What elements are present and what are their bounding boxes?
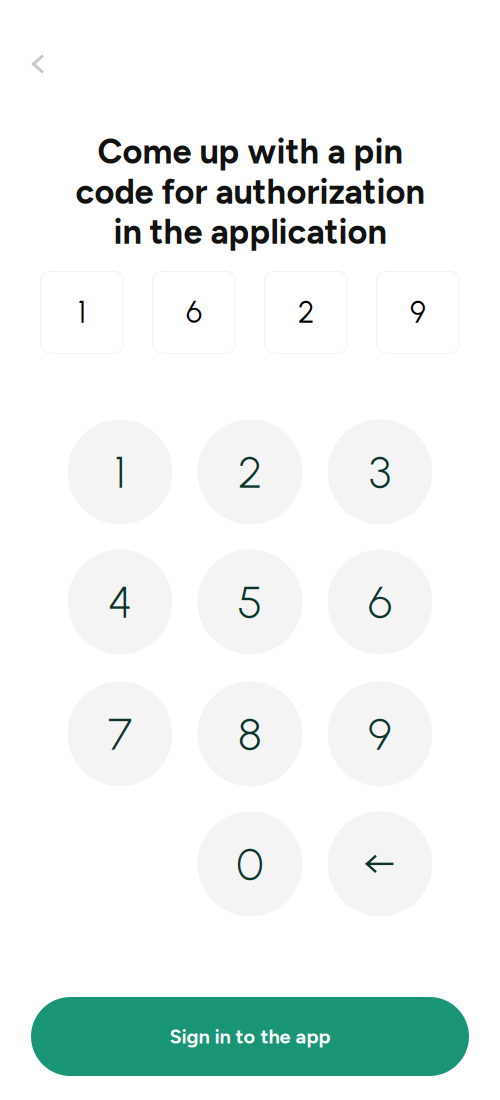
staticText: 1: [78, 294, 86, 330]
staticText: 2: [238, 445, 262, 499]
button[interactable]: Delete: [327, 811, 432, 916]
button[interactable]: 9: [327, 681, 432, 786]
button[interactable]: 0: [197, 811, 302, 916]
staticText: 8: [238, 707, 262, 761]
button[interactable]: 2: [197, 419, 302, 524]
staticText: 3: [369, 445, 391, 499]
staticText: 7: [108, 707, 132, 761]
button[interactable]: Sign in to the app: [31, 997, 469, 1076]
staticText: 0: [236, 837, 263, 891]
staticText: 6: [368, 575, 392, 629]
staticText: Sign in to the app: [169, 1024, 330, 1048]
staticText: in the application: [113, 211, 386, 252]
staticText: code for authorization: [75, 171, 424, 212]
staticText: 9: [410, 294, 426, 330]
staticText: 1: [114, 445, 125, 499]
staticText: 5: [237, 575, 262, 629]
button[interactable]: 4: [67, 549, 172, 654]
button[interactable]: 3: [327, 419, 432, 524]
staticText: 6: [186, 294, 202, 330]
staticText: 2: [298, 294, 314, 330]
button[interactable]: 1: [67, 419, 172, 524]
staticText: 4: [108, 575, 132, 629]
staticText: 9: [368, 707, 392, 761]
button[interactable]: 8: [197, 681, 302, 786]
staticText: Come up with a pin: [97, 131, 402, 172]
button[interactable]: 7: [67, 681, 172, 786]
button[interactable]: 6: [327, 549, 432, 654]
button[interactable]: Back: [16, 42, 60, 86]
button[interactable]: 5: [197, 549, 302, 654]
